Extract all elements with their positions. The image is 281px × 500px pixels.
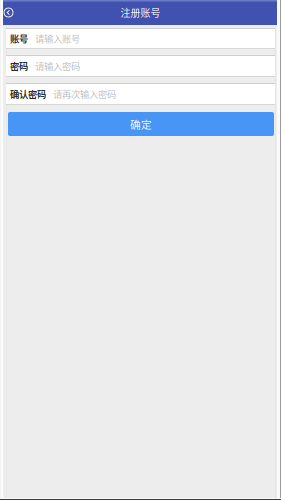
- button[interactable]: 返回: [0, 0, 17, 25]
- button[interactable]: 账号: [6, 28, 275, 49]
- staticText: 注册账号: [120, 5, 160, 20]
- button[interactable]: 确定: [8, 112, 274, 136]
- staticText: 确定: [130, 116, 152, 132]
- button[interactable]: 确认密码: [6, 83, 275, 105]
- staticText: 密码: [10, 59, 28, 73]
- staticText: 请再次输入密码: [53, 87, 116, 101]
- staticText: 账号: [10, 32, 28, 45]
- button[interactable]: 密码: [6, 55, 275, 77]
- staticText: 请输入密码: [35, 59, 80, 73]
- staticText: 确认密码: [10, 87, 46, 101]
- staticText: 请输入账号: [35, 32, 80, 45]
